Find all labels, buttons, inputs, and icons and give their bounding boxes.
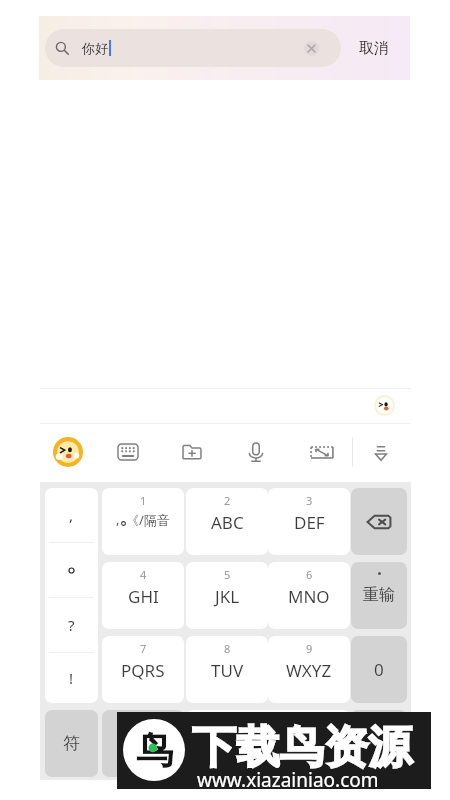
staticText: 下载鸟资源 — [192, 720, 412, 775]
button[interactable]: 3 — [268, 488, 350, 555]
staticText: ? — [68, 615, 75, 635]
button[interactable]: Clear text — [304, 41, 319, 56]
staticText: , — [116, 510, 120, 528]
staticText: 8 — [224, 641, 231, 656]
staticText: DEF — [294, 511, 325, 534]
staticText: MNO — [288, 585, 330, 608]
staticText: 3 — [306, 493, 313, 508]
button[interactable]: 0 — [351, 636, 407, 703]
staticText: WXYZ — [286, 659, 332, 682]
staticText: , — [69, 505, 74, 525]
button[interactable]: Keyboard layout — [114, 438, 142, 466]
button[interactable]: 4 — [102, 562, 184, 629]
button[interactable]: 2 — [186, 488, 268, 555]
staticText: www.xiazainiao.com — [197, 767, 379, 793]
button[interactable]: Emoji suggestion — [373, 394, 395, 416]
staticText: 0 — [374, 658, 384, 681]
button[interactable]: Resize keyboard — [308, 438, 336, 466]
staticText: 4 — [140, 567, 147, 582]
button[interactable]: 9 — [268, 636, 350, 703]
button[interactable]: 5 — [186, 562, 268, 629]
staticText: TUV — [211, 659, 244, 682]
button[interactable]: 符 — [45, 710, 98, 777]
staticText: 空格 — [254, 735, 282, 753]
staticText: 重输 — [363, 585, 395, 605]
button[interactable]: Emoji — [53, 437, 83, 467]
staticText: 7 — [140, 641, 147, 656]
staticText: ! — [69, 668, 74, 688]
staticText: 符 — [63, 733, 80, 754]
staticText: 1 — [140, 493, 147, 508]
staticText: 换行 — [364, 734, 394, 753]
button[interactable]: 6 — [268, 562, 350, 629]
staticText: 《/隔音 — [126, 511, 170, 529]
button[interactable]: 1 — [102, 488, 184, 555]
staticText: 5 — [224, 567, 231, 582]
staticText: 6 — [306, 567, 313, 582]
button[interactable]: 取消 — [352, 32, 396, 64]
staticText: 鸟 — [136, 727, 173, 774]
button[interactable]: 8 — [186, 636, 268, 703]
button[interactable]: 重输 — [351, 562, 407, 629]
button[interactable]: ? — [45, 598, 98, 652]
button[interactable]: 空格 — [186, 710, 350, 777]
button[interactable]: 你好 — [45, 29, 341, 67]
button[interactable]: 7 — [102, 636, 184, 703]
staticText: 9 — [306, 641, 313, 656]
button[interactable] — [45, 543, 98, 597]
button[interactable]: Backspace — [351, 488, 407, 555]
button[interactable]: 中/英 — [102, 710, 184, 777]
button[interactable]: Hide keyboard — [367, 438, 395, 466]
staticText: 中/英 — [125, 734, 161, 754]
staticText: GHI — [128, 585, 159, 608]
staticText: PQRS — [121, 659, 165, 682]
button[interactable]: ! — [45, 653, 98, 703]
button[interactable]: Add clipboard — [178, 438, 206, 466]
button[interactable]: Voice input — [242, 438, 270, 466]
staticText: JKL — [215, 585, 240, 608]
staticText: 2 — [224, 493, 231, 508]
staticText: 取消 — [359, 39, 389, 58]
button[interactable]: Enter — [351, 710, 407, 777]
staticText: 你好 — [82, 40, 108, 56]
button[interactable]: , — [45, 488, 98, 542]
staticText: ABC — [211, 511, 244, 534]
